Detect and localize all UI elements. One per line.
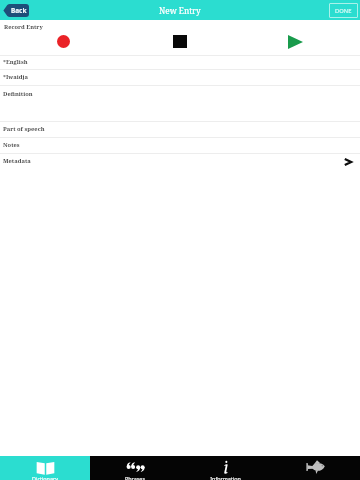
button[interactable]: Information bbox=[180, 456, 270, 480]
button[interactable]: DONE bbox=[329, 3, 358, 18]
staticText: Notes bbox=[3, 141, 20, 149]
button[interactable]: *Iwaidja bbox=[0, 70, 360, 85]
button[interactable]: Notes bbox=[0, 138, 360, 153]
staticText: Phrases bbox=[125, 475, 145, 480]
button[interactable]: *English bbox=[0, 56, 360, 69]
button[interactable]: Record bbox=[57, 35, 70, 48]
button[interactable]: Play bbox=[288, 35, 303, 49]
button[interactable]: Phrases bbox=[90, 456, 180, 480]
staticText: *English bbox=[3, 58, 28, 66]
staticText: New Entry bbox=[159, 5, 201, 16]
button[interactable]: Part of speech bbox=[0, 122, 360, 137]
button[interactable]: Fish bbox=[270, 456, 360, 480]
button[interactable]: Dictionary bbox=[0, 456, 90, 480]
staticText: Back bbox=[11, 6, 27, 15]
staticText: Dictionary bbox=[32, 475, 58, 480]
button[interactable]: Definition bbox=[0, 86, 360, 121]
button[interactable]: Metadata bbox=[0, 154, 360, 169]
staticText: *Iwaidja bbox=[3, 73, 28, 81]
button[interactable]: Back bbox=[3, 4, 29, 17]
staticText: DONE bbox=[335, 7, 352, 15]
staticText: Record Entry bbox=[4, 23, 43, 31]
staticText: Metadata bbox=[3, 157, 31, 165]
staticText: Information bbox=[210, 475, 241, 480]
staticText: Definition bbox=[3, 90, 33, 98]
staticText: Part of speech bbox=[3, 125, 45, 133]
